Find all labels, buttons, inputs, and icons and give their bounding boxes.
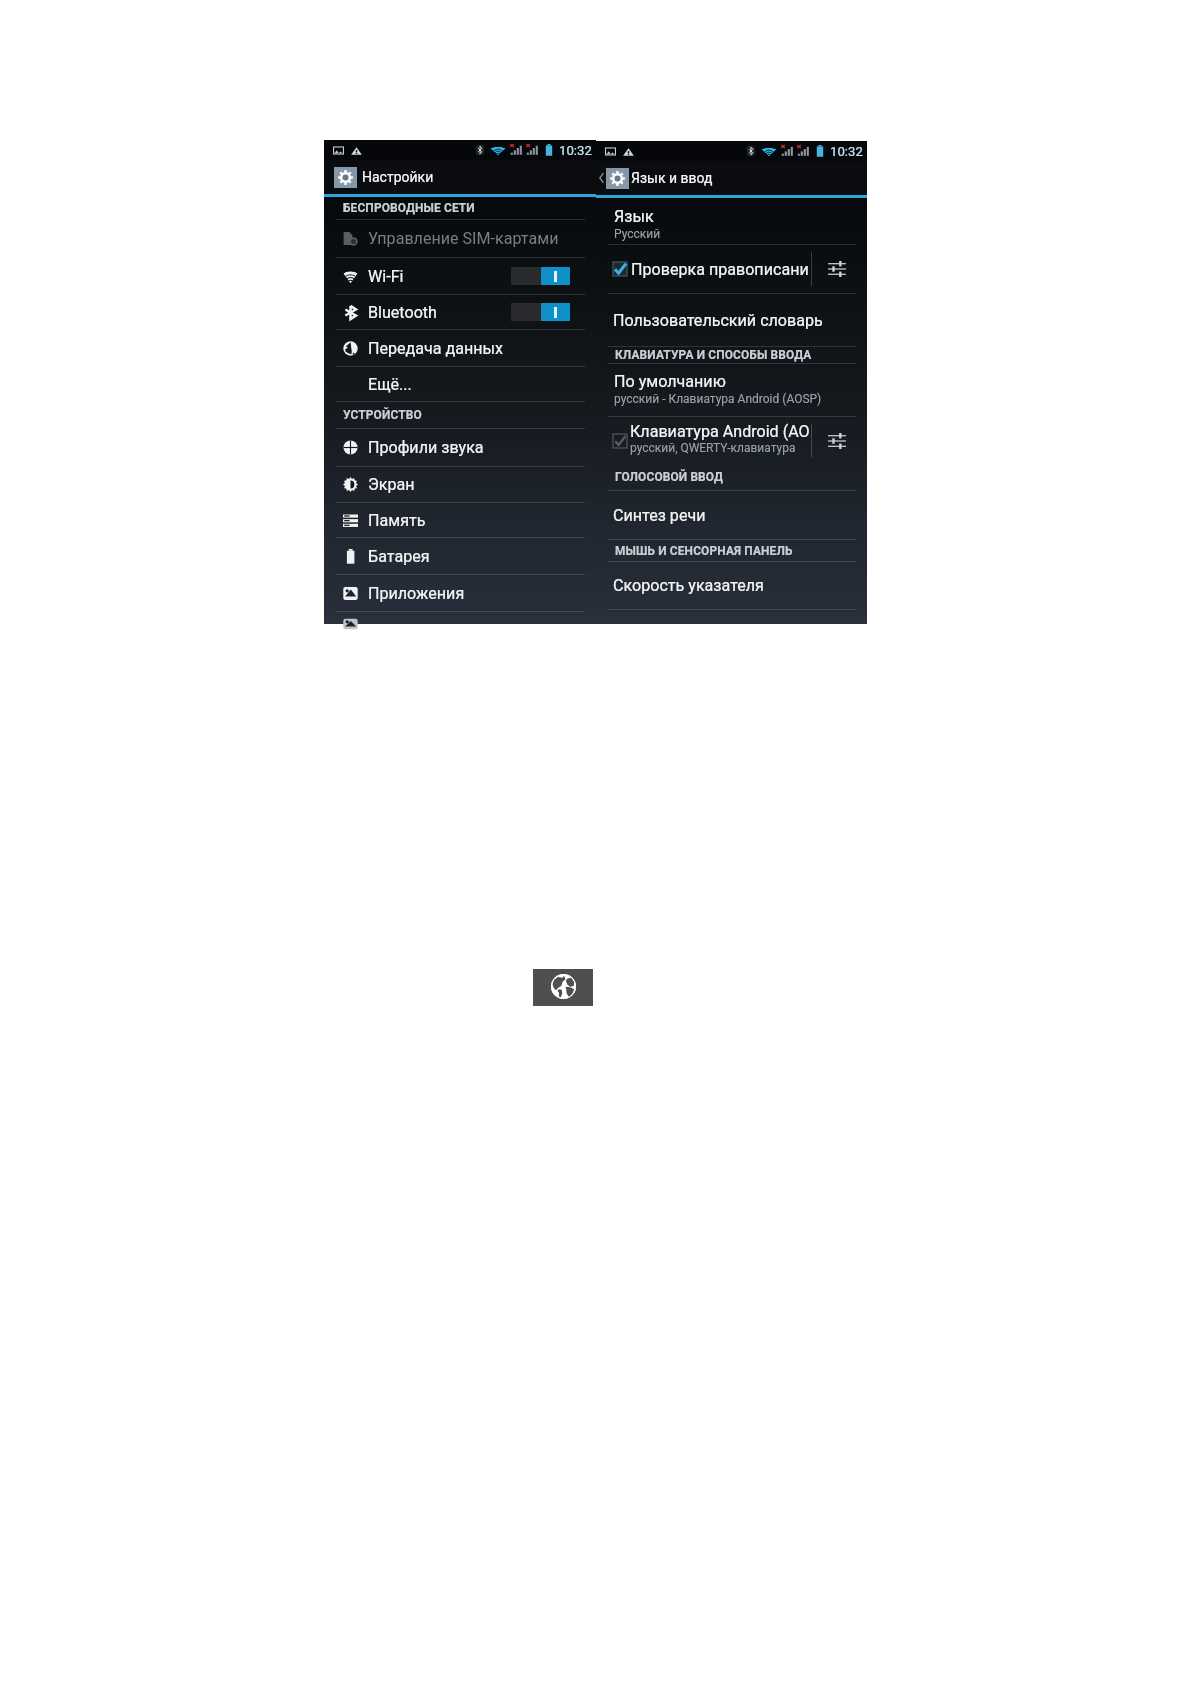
button[interactable]: Настройки bbox=[324, 160, 596, 194]
button[interactable]: Скорость указателя bbox=[596, 562, 867, 610]
staticText: Память bbox=[368, 511, 426, 530]
button[interactable]: Back bbox=[596, 161, 867, 195]
staticText: Передача данных bbox=[368, 339, 504, 358]
staticText: Батарея bbox=[368, 547, 430, 566]
staticText: русский, QWERTY-клавиатура bbox=[630, 441, 796, 455]
button[interactable]: Экран bbox=[324, 467, 596, 503]
staticText: Проверка правописани bbox=[631, 260, 809, 279]
button[interactable]: Передача данных bbox=[324, 330, 596, 367]
button[interactable]: Память bbox=[324, 503, 596, 538]
button[interactable]: Клавиатура Android (AO bbox=[596, 417, 811, 464]
staticText: Язык bbox=[614, 207, 654, 226]
button[interactable]: Профили звука bbox=[324, 429, 596, 467]
staticText: УСТРОЙСТВО bbox=[343, 408, 422, 422]
staticText: Синтез речи bbox=[613, 506, 706, 525]
staticText: КЛАВИАТУРА И СПОСОБЫ ВВОДА bbox=[615, 348, 812, 362]
button[interactable]: Globe icon bbox=[533, 969, 593, 1006]
button[interactable]: Input method settings bbox=[812, 417, 867, 464]
button[interactable]: Пользовательский словарь bbox=[596, 294, 867, 347]
staticText: Скорость указателя bbox=[613, 576, 764, 595]
button[interactable]: Wi-Fi bbox=[324, 258, 596, 295]
button[interactable]: Back bbox=[597, 167, 606, 189]
button[interactable]: Toggle Bluetooth bbox=[511, 303, 570, 321]
button[interactable]: Bluetooth bbox=[324, 295, 596, 330]
staticText: Wi-Fi bbox=[368, 267, 404, 286]
staticText: Управление SIM-картами bbox=[368, 229, 559, 248]
staticText: ГОЛОСОВОЙ ВВОД bbox=[615, 470, 724, 484]
staticText: Экран bbox=[368, 475, 415, 494]
staticText: По умолчанию bbox=[614, 372, 726, 391]
staticText: русский - Клавиатура Android (AOSP) bbox=[614, 392, 822, 406]
button[interactable]: Язык bbox=[596, 198, 867, 245]
button[interactable]: Управление SIM-картами bbox=[324, 220, 596, 258]
staticText: МЫШЬ И СЕНСОРНАЯ ПАНЕЛЬ bbox=[615, 544, 793, 558]
staticText: Профили звука bbox=[368, 438, 484, 457]
button[interactable]: Батарея bbox=[324, 538, 596, 575]
button[interactable]: Приложения bbox=[324, 575, 596, 612]
staticText: Пользовательский словарь bbox=[613, 311, 823, 330]
button[interactable]: Input method settings bbox=[812, 245, 867, 293]
button[interactable]: По умолчанию bbox=[596, 364, 867, 417]
staticText: Язык и ввод bbox=[631, 170, 713, 186]
button[interactable]: Синтез речи bbox=[596, 491, 867, 540]
button[interactable]: Toggle Wi-Fi bbox=[511, 267, 570, 285]
staticText: 10:32 bbox=[830, 144, 863, 159]
staticText: Bluetooth bbox=[368, 303, 437, 322]
button[interactable]: Проверка правописани bbox=[596, 245, 811, 293]
staticText: Клавиатура Android (AO bbox=[630, 422, 810, 441]
staticText: Ещё... bbox=[368, 375, 412, 394]
staticText: Русский bbox=[614, 227, 661, 241]
button[interactable]: Ещё... bbox=[324, 367, 596, 402]
staticText: Приложения bbox=[368, 584, 465, 603]
staticText: 10:32 bbox=[559, 143, 592, 158]
staticText: БЕСПРОВОДНЫЕ СЕТИ bbox=[343, 201, 475, 215]
staticText: Настройки bbox=[362, 169, 434, 185]
